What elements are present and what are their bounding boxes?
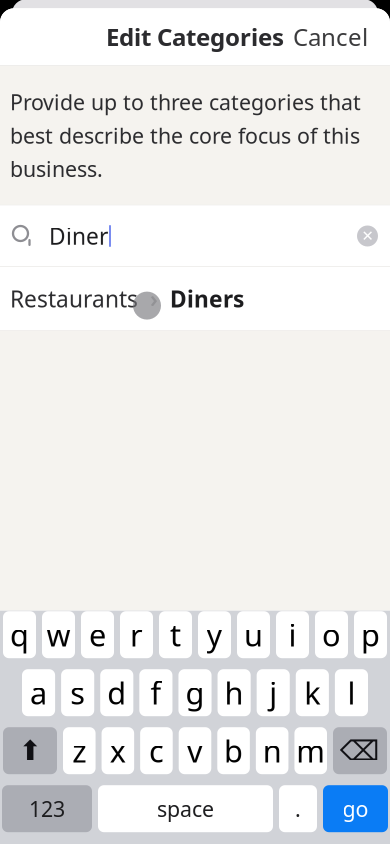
button[interactable]: v	[179, 727, 211, 774]
staticText: d	[107, 672, 126, 713]
button[interactable]: h	[218, 669, 251, 716]
button[interactable]: w	[42, 611, 75, 658]
staticText: Restaurants	[10, 283, 138, 314]
button[interactable]: f	[139, 669, 172, 716]
staticText: ⬆	[18, 735, 41, 767]
staticText: ✕	[361, 228, 373, 244]
button[interactable]: o	[315, 611, 348, 658]
staticText: o	[322, 614, 341, 655]
button[interactable]: s	[61, 669, 94, 716]
staticText: r	[130, 614, 143, 655]
staticText: l	[347, 672, 355, 713]
button[interactable]: q	[3, 611, 36, 658]
button[interactable]: go	[323, 785, 388, 832]
button[interactable]: Clear text	[345, 215, 390, 256]
button[interactable]: p	[354, 611, 387, 658]
staticText: 123	[29, 794, 65, 823]
button[interactable]: t	[159, 611, 192, 658]
staticText: a	[30, 672, 47, 713]
staticText: b	[224, 730, 243, 771]
staticText: go	[342, 794, 368, 823]
button[interactable]: g	[178, 669, 211, 716]
staticText: h	[225, 672, 244, 713]
button[interactable]: i	[276, 611, 309, 658]
staticText: .	[295, 794, 301, 823]
staticText: space	[157, 794, 214, 823]
staticText: Diner	[49, 221, 108, 251]
button[interactable]: e	[81, 611, 114, 658]
button[interactable]: d	[100, 669, 133, 716]
staticText: Cancel	[293, 21, 368, 53]
staticText: j	[269, 672, 277, 713]
staticText: f	[150, 672, 161, 713]
staticText: Provide up to three categories that best…	[10, 88, 361, 183]
staticText: x	[110, 730, 126, 771]
staticText: n	[263, 730, 282, 771]
staticText: ›	[150, 283, 158, 314]
button[interactable]: k	[296, 669, 329, 716]
staticText: y	[206, 614, 222, 655]
button[interactable]: b	[217, 727, 250, 774]
button[interactable]: m	[294, 727, 327, 774]
button[interactable]: Shift	[3, 727, 57, 774]
staticText: k	[304, 672, 320, 713]
button[interactable]: space	[98, 785, 273, 832]
staticText: c	[149, 730, 164, 771]
button[interactable]: n	[256, 727, 288, 774]
button[interactable]: 123	[2, 785, 92, 832]
button[interactable]: Delete	[333, 727, 387, 774]
staticText: u	[244, 614, 263, 655]
staticText: g	[185, 672, 204, 713]
staticText: m	[296, 730, 325, 771]
staticText: Edit Categories	[106, 21, 284, 53]
button[interactable]: u	[237, 611, 270, 658]
button[interactable]: l	[335, 669, 368, 716]
staticText: e	[89, 614, 106, 655]
button[interactable]: y	[198, 611, 231, 658]
staticText: z	[72, 730, 86, 771]
staticText: q	[10, 614, 29, 655]
staticText: s	[70, 672, 85, 713]
staticText: v	[187, 730, 203, 771]
button[interactable]: j	[257, 669, 290, 716]
button[interactable]: Restaurants	[0, 267, 390, 330]
staticText: t	[170, 614, 181, 655]
staticText: i	[288, 614, 296, 655]
staticText: w	[46, 614, 70, 655]
button[interactable]: c	[140, 727, 173, 774]
button[interactable]: x	[102, 727, 134, 774]
staticText: p	[361, 614, 380, 655]
button[interactable]: z	[63, 727, 96, 774]
staticText: ⌫	[340, 735, 380, 767]
button[interactable]: .	[279, 785, 317, 832]
button[interactable]: r	[120, 611, 153, 658]
staticText: Diners	[170, 283, 244, 314]
button[interactable]: a	[22, 669, 55, 716]
button[interactable]: Cancel	[279, 11, 382, 63]
